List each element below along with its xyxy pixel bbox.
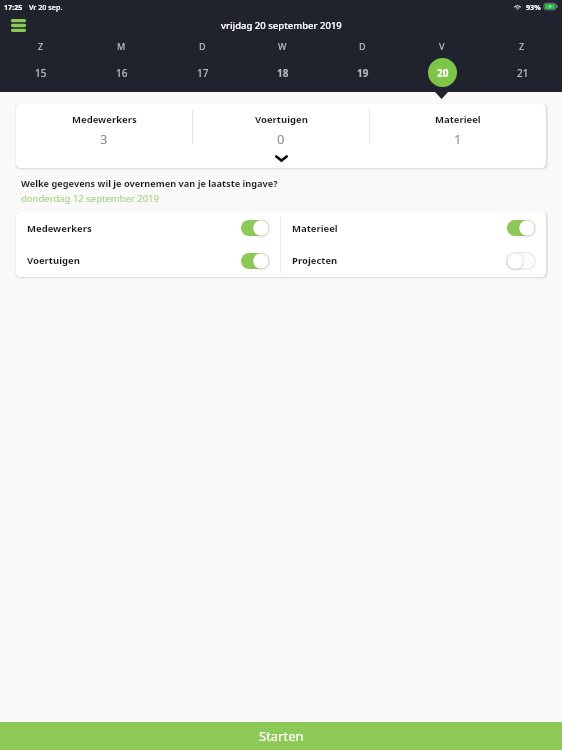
staticText: D (359, 40, 366, 52)
staticText: donderdag 12 september 2019 (21, 192, 159, 205)
staticText: Medewerkers (72, 113, 137, 126)
button[interactable]: M (81, 38, 162, 92)
button[interactable]: Uitklappen (16, 149, 546, 168)
staticText: 3 (100, 130, 108, 148)
staticText: D (199, 40, 206, 52)
staticText: Z (519, 40, 525, 52)
staticText: M (117, 40, 126, 52)
staticText: Projecten (292, 254, 338, 267)
staticText: Z (38, 40, 44, 52)
button[interactable]: Voertuigen (193, 104, 369, 149)
button[interactable]: Materieel (370, 104, 546, 149)
button[interactable]: D (162, 38, 242, 92)
staticText: 17 (197, 66, 209, 80)
button[interactable]: Medewerkers (16, 212, 280, 244)
staticText: Voertuigen (255, 113, 308, 126)
staticText: 15 (35, 66, 47, 80)
button[interactable]: Voertuigen (16, 244, 280, 277)
staticText: vrijdag 20 september 2019 (221, 19, 342, 32)
staticText: Materieel (292, 222, 338, 235)
staticText: 20 (437, 66, 449, 80)
staticText: Materieel (435, 113, 481, 126)
button[interactable]: Z (0, 38, 81, 92)
staticText: 93% (526, 2, 541, 12)
staticText: 16 (116, 66, 128, 80)
staticText: W (278, 40, 287, 52)
button[interactable]: Materieel (281, 212, 546, 244)
staticText: Voertuigen (27, 254, 80, 267)
staticText: Welke gegevens wil je overnemen van je l… (21, 177, 278, 190)
button[interactable]: Z (482, 38, 562, 92)
staticText: 19 (357, 66, 369, 80)
button[interactable]: Starten (0, 722, 562, 750)
staticText: 1 (454, 130, 462, 148)
staticText: Vr 20 sep. (29, 2, 63, 12)
staticText: 17:25 (4, 2, 23, 12)
button[interactable]: Menu (6, 15, 30, 37)
staticText: V (439, 40, 445, 52)
staticText: 18 (277, 66, 289, 80)
button[interactable]: W (242, 38, 322, 92)
button[interactable]: D (322, 38, 402, 92)
staticText: 0 (277, 130, 285, 148)
button[interactable]: V (402, 38, 482, 92)
staticText: 21 (517, 66, 529, 80)
staticText: Starten (259, 727, 304, 745)
staticText: Medewerkers (27, 222, 92, 235)
button[interactable]: Medewerkers (16, 104, 192, 149)
button[interactable]: Projecten (281, 244, 546, 277)
